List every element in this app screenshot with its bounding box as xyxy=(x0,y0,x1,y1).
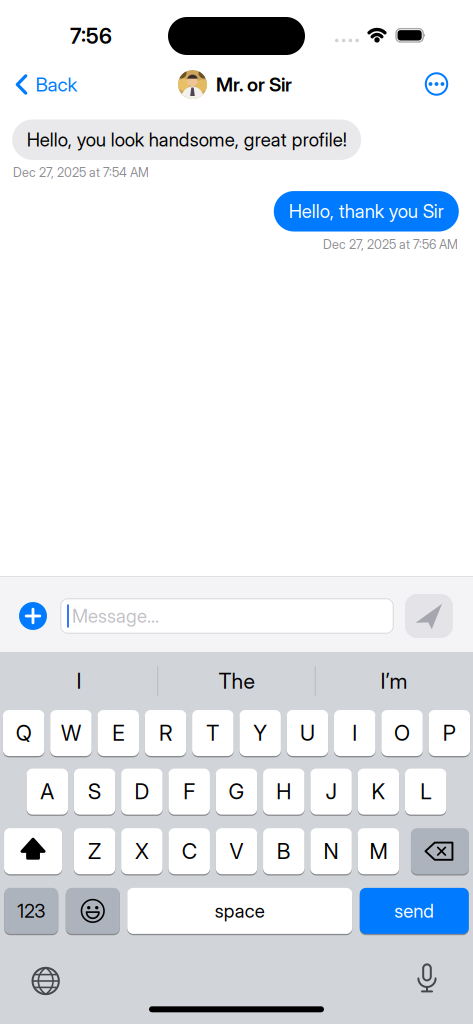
button[interactable]: Back xyxy=(15,59,77,109)
staticText: E xyxy=(112,720,124,746)
button[interactable]: W xyxy=(50,709,92,757)
staticText: send xyxy=(394,900,434,922)
staticText: U xyxy=(300,720,315,746)
button[interactable]: Q xyxy=(3,709,44,757)
button[interactable] xyxy=(411,827,469,875)
button[interactable]: R xyxy=(145,709,186,757)
button[interactable]: N xyxy=(310,827,352,875)
staticText: 123 xyxy=(17,900,45,922)
button[interactable]: J xyxy=(310,768,352,816)
button[interactable] xyxy=(31,966,61,996)
button[interactable]: C xyxy=(168,827,210,875)
staticText: V xyxy=(229,838,243,864)
staticText: S xyxy=(88,779,101,804)
button[interactable]: X xyxy=(121,827,163,875)
staticText: Hello, thank you Sir xyxy=(289,200,444,223)
staticText: 7:56 xyxy=(70,23,112,49)
staticText: I xyxy=(352,720,357,746)
staticText: O xyxy=(394,720,410,746)
button[interactable]: M xyxy=(358,827,399,875)
button[interactable] xyxy=(419,67,453,101)
button[interactable]: U xyxy=(287,709,328,757)
staticText: Dec 27, 2025 at 7:56 AM xyxy=(323,237,458,252)
staticText: W xyxy=(61,720,81,746)
staticText: B xyxy=(277,838,291,864)
button[interactable]: I xyxy=(1,659,157,703)
staticText: I xyxy=(76,668,81,694)
button[interactable]: O xyxy=(381,709,423,757)
staticText: L xyxy=(420,779,431,804)
button[interactable]: L xyxy=(405,768,446,816)
button[interactable]: S xyxy=(74,768,115,816)
staticText: Back xyxy=(35,73,77,96)
button[interactable]: B xyxy=(263,827,304,875)
staticText: K xyxy=(371,779,385,804)
staticText: R xyxy=(159,720,172,746)
staticText: space xyxy=(215,900,265,922)
button[interactable]: G xyxy=(216,768,257,816)
button[interactable]: A xyxy=(27,768,68,816)
button[interactable]: Y xyxy=(239,709,281,757)
button[interactable] xyxy=(412,963,442,995)
button[interactable]: D xyxy=(121,768,163,816)
staticText: C xyxy=(182,838,197,864)
staticText: I’m xyxy=(380,668,407,694)
button[interactable] xyxy=(405,594,453,638)
button[interactable]: send xyxy=(360,887,469,935)
button[interactable]: E xyxy=(97,709,139,757)
staticText: The xyxy=(218,668,254,694)
staticText: Message... xyxy=(72,605,159,627)
button[interactable]: Message... xyxy=(60,598,394,634)
button[interactable]: 123 xyxy=(4,887,58,935)
button[interactable]: The xyxy=(158,659,315,703)
staticText: H xyxy=(276,779,291,804)
staticText: P xyxy=(443,720,456,746)
staticText: T xyxy=(206,720,219,746)
staticText: Hello, you look handsome, great profile! xyxy=(27,128,347,151)
staticText: Y xyxy=(253,720,267,746)
button[interactable]: T xyxy=(192,709,234,757)
button[interactable]: P xyxy=(429,709,470,757)
staticText: N xyxy=(324,838,339,864)
button[interactable] xyxy=(16,599,50,633)
staticText: G xyxy=(228,779,244,804)
staticText: Dec 27, 2025 at 7:54 AM xyxy=(13,165,149,180)
staticText: Z xyxy=(88,838,101,864)
button[interactable]: V xyxy=(216,827,257,875)
button[interactable]: space xyxy=(127,887,352,935)
button[interactable] xyxy=(4,827,62,875)
button[interactable]: H xyxy=(263,768,305,816)
staticText: X xyxy=(135,838,149,864)
staticText: Q xyxy=(16,720,32,746)
staticText: M xyxy=(369,838,387,864)
staticText: J xyxy=(326,779,337,804)
staticText: A xyxy=(40,779,54,804)
staticText: D xyxy=(134,779,149,804)
button[interactable]: Z xyxy=(74,827,115,875)
staticText: Mr. or Sir xyxy=(216,73,292,96)
button[interactable]: I’m xyxy=(316,659,472,703)
button[interactable]: I xyxy=(334,709,375,757)
button[interactable]: Mr. or Sir xyxy=(178,70,292,99)
staticText: F xyxy=(183,779,195,804)
button[interactable]: K xyxy=(358,768,399,816)
button[interactable]: F xyxy=(168,768,210,816)
button[interactable] xyxy=(66,887,120,935)
